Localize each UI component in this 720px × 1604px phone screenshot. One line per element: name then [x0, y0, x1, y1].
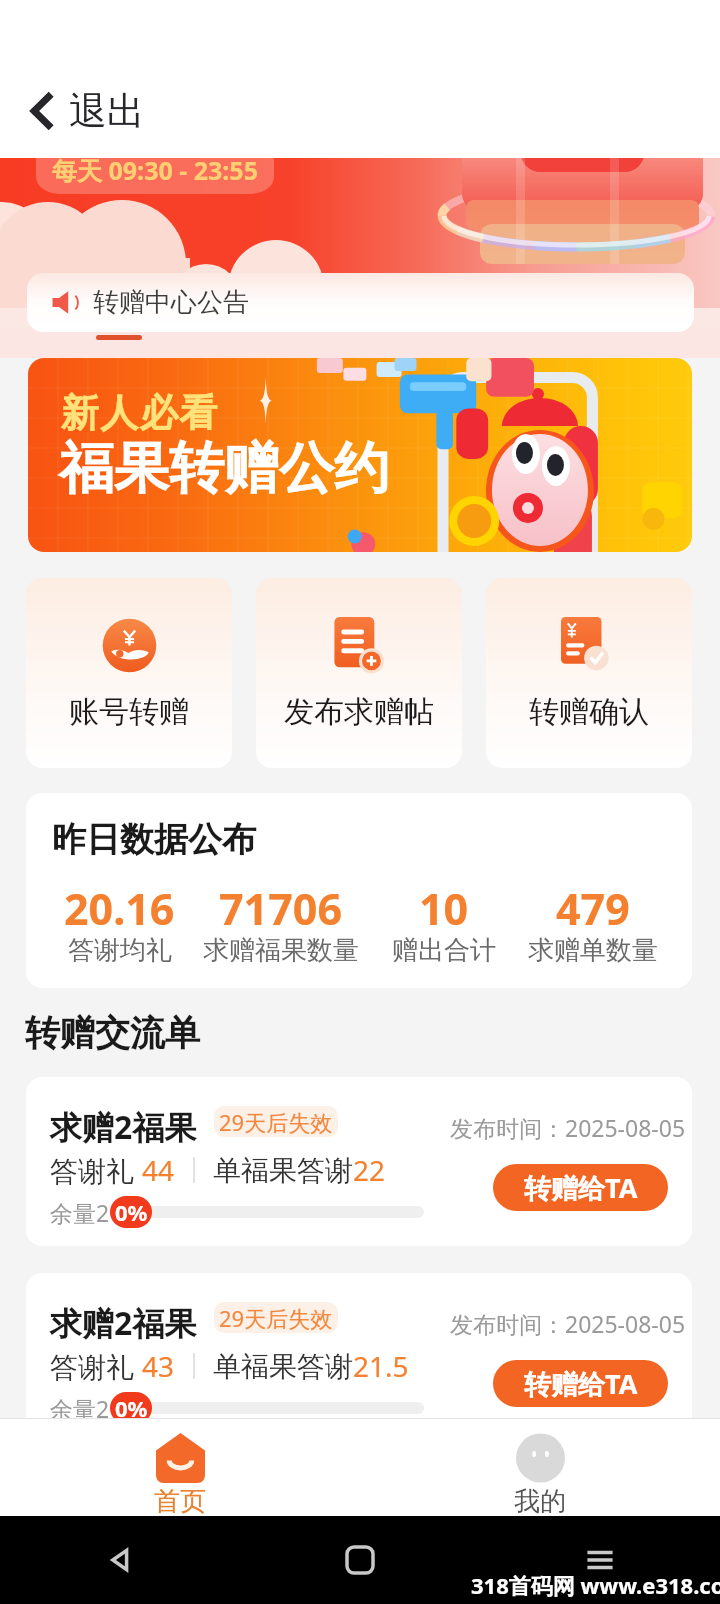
- button[interactable]: 转赠确认: [486, 578, 692, 768]
- staticText: 单福果答谢: [213, 1153, 353, 1188]
- staticText: 账号转赠: [69, 693, 189, 731]
- staticText: 转赠交流单: [25, 1011, 200, 1055]
- staticText: 退出: [69, 87, 145, 135]
- staticText: 转赠给TA: [524, 1365, 638, 1402]
- button[interactable]: 求赠2福果: [26, 1077, 692, 1246]
- staticText: 求赠单数量: [528, 934, 658, 967]
- button[interactable]: 转赠中心公告: [27, 273, 694, 332]
- staticText: 我的: [514, 1485, 566, 1516]
- staticText: 43: [142, 1347, 175, 1385]
- staticText: 10: [419, 879, 469, 938]
- staticText: 转赠中心公告: [93, 286, 249, 319]
- staticText: 答谢礼: [50, 1347, 142, 1385]
- staticText: 发布时间：2025-08-05: [450, 1112, 686, 1143]
- staticText: 0%: [115, 1393, 148, 1423]
- button[interactable]: 首页: [0, 1418, 360, 1516]
- staticText: 单福果答谢: [213, 1349, 353, 1384]
- staticText: 答谢均礼: [68, 934, 172, 967]
- button[interactable]: 我的: [360, 1418, 720, 1516]
- staticText: 发布求赠帖: [284, 693, 434, 731]
- staticText: 29天后失效: [219, 1303, 333, 1333]
- staticText: 求赠2福果: [50, 1105, 197, 1149]
- button[interactable]: 发布求赠帖: [256, 578, 462, 768]
- staticText: 44: [142, 1151, 175, 1189]
- button[interactable]: 转赠给TA: [493, 1164, 668, 1211]
- staticText: 余量2: [50, 1197, 110, 1228]
- staticText: 求赠2福果: [50, 1301, 197, 1345]
- staticText: 转赠确认: [529, 693, 649, 731]
- staticText: 22: [353, 1151, 386, 1189]
- staticText: 求赠福果数量: [203, 934, 359, 967]
- staticText: 福果转赠公约: [59, 434, 389, 503]
- staticText: 21.5: [353, 1347, 409, 1385]
- staticText: 71706: [219, 879, 342, 938]
- button[interactable]: 账号转赠: [26, 578, 232, 768]
- staticText: 479: [556, 879, 630, 938]
- staticText: 首页: [154, 1485, 206, 1516]
- staticText: 20.16: [64, 879, 175, 938]
- staticText: 318首码网 www.e318.com: [471, 1570, 720, 1600]
- button[interactable]: Back: [0, 72, 161, 158]
- button[interactable]: 福果转赠公约: [28, 358, 692, 552]
- button[interactable]: 转赠给TA: [493, 1360, 668, 1407]
- staticText: 昨日数据公布: [52, 818, 256, 861]
- button[interactable]: 求赠2福果: [26, 1273, 692, 1442]
- staticText: 每天 09:30 - 23:55: [52, 158, 258, 187]
- staticText: 发布时间：2025-08-05: [450, 1308, 686, 1339]
- staticText: 答谢礼: [50, 1151, 142, 1189]
- staticText: 赠出合计: [392, 934, 496, 967]
- staticText: 转赠给TA: [524, 1169, 638, 1206]
- staticText: 新人必看: [60, 389, 218, 437]
- staticText: 余量2: [50, 1393, 110, 1424]
- staticText: 29天后失效: [219, 1107, 333, 1137]
- staticText: 0%: [115, 1197, 148, 1227]
